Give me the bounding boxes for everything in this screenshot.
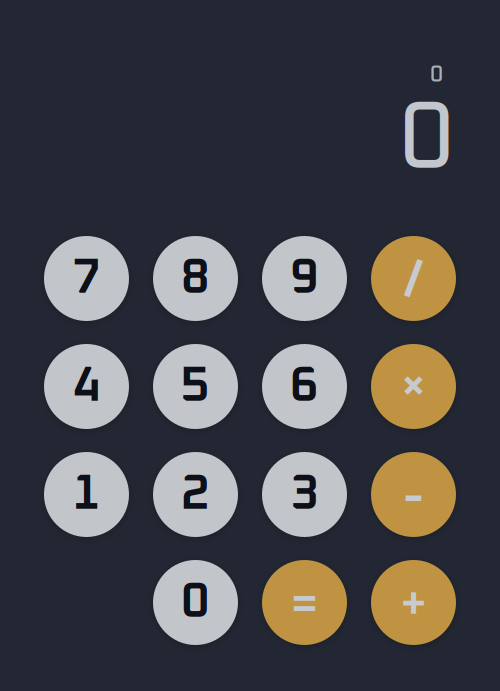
staticText: 6 xyxy=(290,362,319,411)
staticText: 2 xyxy=(181,470,210,519)
staticText: 0 xyxy=(430,64,443,86)
button[interactable]: 1 xyxy=(44,452,129,537)
staticText: / xyxy=(403,256,424,304)
button[interactable]: 2 xyxy=(153,452,238,537)
button[interactable]: Multiply xyxy=(371,344,456,429)
button[interactable]: 3 xyxy=(262,452,347,537)
staticText: 1 xyxy=(72,470,101,519)
button[interactable]: 5 xyxy=(153,344,238,429)
staticText: 3 xyxy=(290,470,319,519)
staticText: × xyxy=(401,367,425,408)
button[interactable]: Equals xyxy=(262,560,347,645)
staticText: 9 xyxy=(290,254,319,303)
button[interactable]: 6 xyxy=(262,344,347,429)
staticText: - xyxy=(403,472,423,525)
staticText: 7 xyxy=(72,254,101,303)
button[interactable]: Divide xyxy=(371,236,456,321)
button[interactable]: Add xyxy=(371,560,456,645)
staticText: + xyxy=(400,583,426,628)
button[interactable]: 9 xyxy=(262,236,347,321)
staticText: = xyxy=(291,582,318,629)
staticText: 8 xyxy=(181,254,210,303)
staticText: 4 xyxy=(72,362,101,411)
button[interactable]: Subtract xyxy=(371,452,456,537)
button[interactable]: 7 xyxy=(44,236,129,321)
staticText: 5 xyxy=(181,362,210,411)
button[interactable]: 0 xyxy=(153,560,238,645)
button[interactable]: 8 xyxy=(153,236,238,321)
button[interactable]: 4 xyxy=(44,344,129,429)
staticText: 0 xyxy=(399,92,454,188)
staticText: 0 xyxy=(181,578,210,627)
